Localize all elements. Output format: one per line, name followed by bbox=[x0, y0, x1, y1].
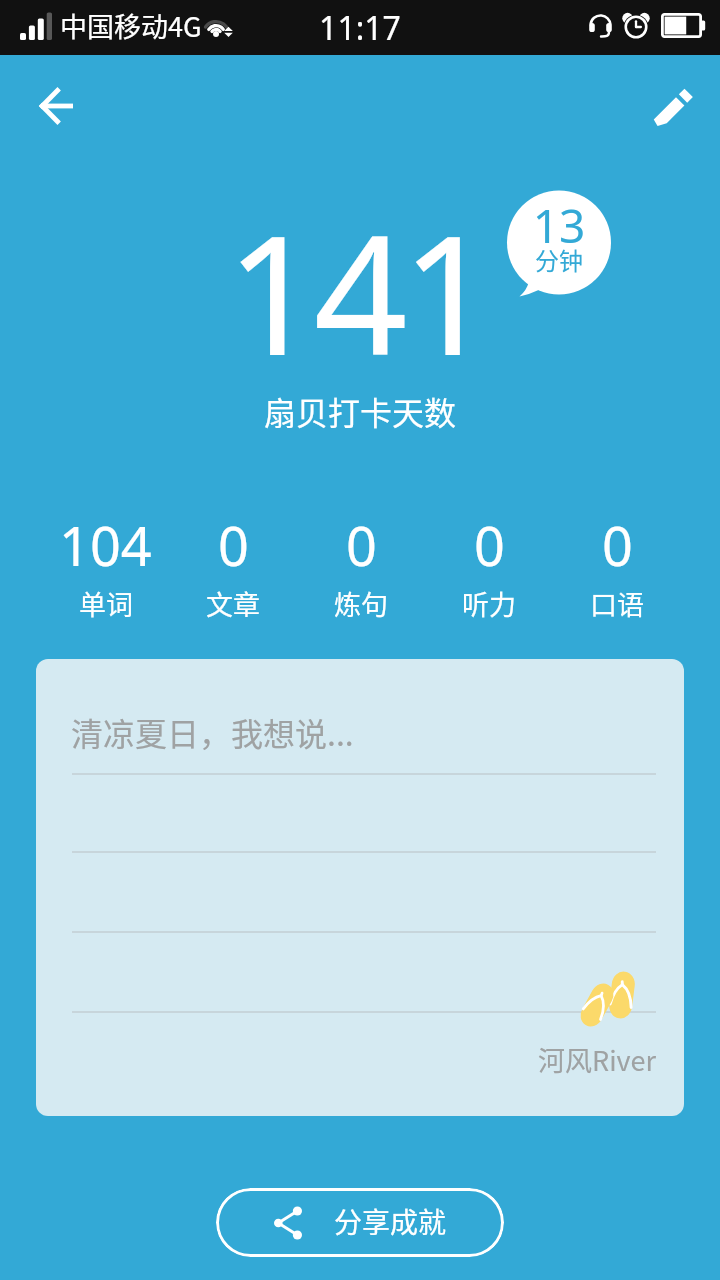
staticText: 0 bbox=[474, 508, 505, 582]
staticText: 0 bbox=[346, 508, 377, 582]
button[interactable]: 0 bbox=[425, 508, 553, 623]
button[interactable]: 分享成就 bbox=[216, 1188, 504, 1257]
staticText: 分钟 bbox=[529, 242, 589, 277]
staticText: 炼句 bbox=[334, 584, 388, 623]
staticText: 中国移动4G bbox=[60, 6, 202, 45]
staticText: 0 bbox=[602, 508, 633, 582]
button[interactable]: Edit bbox=[647, 78, 703, 134]
button[interactable]: 0 bbox=[169, 508, 297, 623]
staticText: 11:17 bbox=[0, 6, 720, 50]
staticText: 104 bbox=[59, 508, 152, 582]
button[interactable]: 0 bbox=[297, 508, 425, 623]
button[interactable]: 104 bbox=[42, 508, 169, 623]
button[interactable]: 清凉夏日，我想说... bbox=[36, 659, 684, 1116]
staticText: 13 bbox=[529, 194, 589, 257]
button[interactable]: Back bbox=[28, 78, 84, 134]
staticText: 0 bbox=[218, 508, 249, 582]
staticText: 河风River bbox=[538, 1040, 656, 1079]
staticText: 口语 bbox=[590, 584, 644, 623]
staticText: 文章 bbox=[206, 584, 260, 623]
staticText: 141 bbox=[226, 180, 490, 403]
staticText: 清凉夏日，我想说... bbox=[71, 709, 354, 755]
staticText: 单词 bbox=[79, 584, 133, 623]
staticText: 扇贝打卡天数 bbox=[0, 388, 720, 434]
staticText: 分享成就 bbox=[334, 1201, 447, 1242]
staticText: 听力 bbox=[462, 584, 516, 623]
button[interactable]: 0 bbox=[553, 508, 681, 623]
